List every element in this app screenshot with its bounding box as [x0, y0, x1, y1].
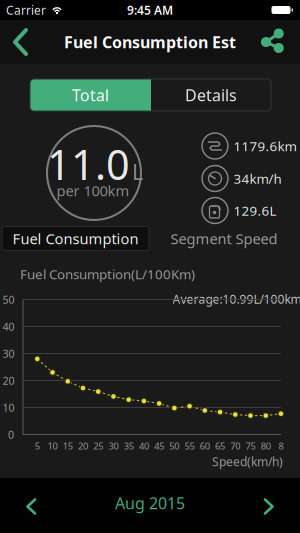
staticText: Carrier [6, 2, 46, 18]
button[interactable]: Segment Speed [150, 226, 297, 250]
staticText: 34km/h [233, 170, 281, 187]
staticText: 20 [2, 373, 14, 388]
staticText: 50 [2, 292, 14, 307]
button[interactable]: Back [0, 20, 40, 64]
staticText: per 100km [56, 181, 129, 200]
staticText: 10 [47, 440, 57, 452]
button[interactable]: Details [151, 79, 271, 111]
staticText: Fuel Consumption Est [64, 31, 236, 53]
staticText: 45 [154, 440, 164, 452]
staticText: 10 [2, 400, 14, 415]
staticText: 1179.6km [233, 137, 296, 155]
staticText: 30 [108, 440, 118, 452]
staticText: Fuel Consumption(L/100Km) [20, 265, 195, 283]
staticText: 5 [35, 440, 40, 452]
staticText: Fuel Consumption [12, 229, 138, 248]
staticText: 40 [139, 440, 149, 452]
staticText: 20 [78, 440, 88, 452]
button[interactable]: Next month [246, 482, 290, 528]
staticText: 11.0 [47, 137, 130, 191]
staticText: 65 [215, 440, 225, 452]
staticText: Average:10.99L/100km [172, 291, 300, 307]
button[interactable]: Total [30, 79, 151, 111]
staticText: L [132, 158, 143, 186]
staticText: 70 [230, 440, 240, 452]
staticText: 35 [124, 440, 134, 452]
button[interactable]: Fuel Consumption [2, 226, 149, 250]
staticText: 25 [93, 440, 103, 452]
staticText: Speed(km/h) [212, 453, 283, 469]
button[interactable]: Share [260, 20, 300, 64]
staticText: 50 [169, 440, 179, 452]
button[interactable]: Aug 2015 [90, 480, 210, 526]
staticText: 75 [245, 440, 255, 452]
staticText: 60 [200, 440, 210, 452]
staticText: 129.6L [233, 202, 276, 219]
staticText: 15 [63, 440, 73, 452]
staticText: Segment Speed [170, 229, 277, 248]
staticText: Total [72, 84, 109, 106]
staticText: Details [185, 84, 237, 106]
staticText: Aug 2015 [115, 492, 185, 514]
staticText: 55 [185, 440, 195, 452]
staticText: 30 [2, 346, 14, 361]
staticText: 0 [8, 427, 14, 442]
staticText: 40 [2, 319, 14, 334]
staticText: 8 [278, 440, 283, 452]
staticText: 9:45 AM [127, 2, 173, 18]
button[interactable]: Previous month [10, 482, 54, 528]
staticText: 80 [261, 440, 271, 452]
